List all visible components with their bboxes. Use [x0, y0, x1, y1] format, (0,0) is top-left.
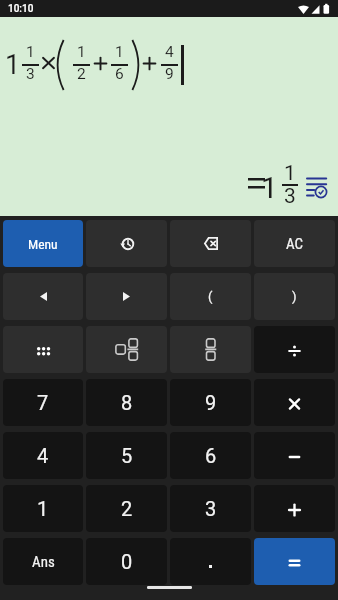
- button[interactable]: [254, 485, 335, 532]
- button[interactable]: [86, 273, 167, 320]
- button[interactable]: 9: [170, 379, 251, 426]
- staticText: 9: [205, 391, 217, 414]
- staticText: 3: [284, 184, 296, 209]
- staticText: 1: [77, 43, 86, 61]
- button[interactable]: ): [254, 273, 335, 320]
- staticText: 3: [205, 497, 217, 520]
- button[interactable]: Menu: [3, 220, 83, 267]
- button[interactable]: 8: [86, 379, 167, 426]
- button[interactable]: [3, 326, 83, 373]
- staticText: 1: [115, 43, 124, 61]
- staticText: (: [208, 289, 213, 304]
- staticText: 1: [37, 497, 49, 520]
- staticText: Ans: [32, 553, 55, 571]
- staticText: 10:10: [8, 3, 34, 15]
- button[interactable]: AC: [254, 220, 335, 267]
- staticText: 7: [37, 391, 49, 414]
- button[interactable]: 0: [86, 538, 167, 585]
- button[interactable]: 7: [3, 379, 83, 426]
- button[interactable]: [86, 326, 167, 373]
- button[interactable]: 4: [3, 432, 83, 479]
- staticText: 4: [37, 444, 49, 467]
- staticText: ): [292, 289, 297, 304]
- button[interactable]: [3, 273, 83, 320]
- button[interactable]: [170, 538, 251, 585]
- staticText: 2: [121, 497, 133, 520]
- button[interactable]: 2: [86, 485, 167, 532]
- staticText: 9: [165, 65, 174, 83]
- button[interactable]: Ans: [3, 538, 83, 585]
- button[interactable]: 5: [86, 432, 167, 479]
- staticText: 6: [115, 65, 124, 83]
- staticText: 5: [121, 444, 133, 467]
- staticText: 1: [5, 49, 21, 81]
- staticText: 1: [284, 161, 296, 186]
- staticText: 2: [77, 65, 86, 83]
- button[interactable]: 6: [170, 432, 251, 479]
- staticText: 3: [26, 65, 35, 83]
- button[interactable]: [254, 432, 335, 479]
- button[interactable]: [254, 379, 335, 426]
- button[interactable]: (: [170, 273, 251, 320]
- staticText: Menu: [28, 236, 58, 252]
- button[interactable]: 3: [170, 485, 251, 532]
- staticText: 8: [121, 391, 133, 414]
- staticText: 4: [165, 43, 174, 61]
- button[interactable]: [170, 326, 251, 373]
- button[interactable]: [306, 177, 327, 198]
- button[interactable]: [170, 220, 251, 267]
- staticText: 0: [121, 550, 133, 573]
- staticText: 1: [261, 170, 278, 205]
- button[interactable]: 1: [3, 485, 83, 532]
- staticText: AC: [286, 235, 304, 253]
- button[interactable]: [254, 326, 335, 373]
- button[interactable]: [254, 538, 335, 585]
- staticText: 1: [26, 43, 35, 61]
- staticText: 6: [205, 444, 217, 467]
- button[interactable]: [86, 220, 167, 267]
